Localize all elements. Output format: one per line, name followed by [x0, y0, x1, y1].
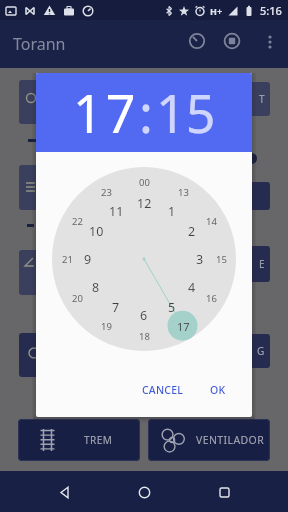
staticText: 11 — [109, 203, 124, 219]
button[interactable] — [19, 250, 49, 295]
staticText: CANCEL — [142, 383, 184, 397]
staticText: 2 — [188, 223, 196, 239]
staticText: 8 — [92, 279, 100, 295]
button[interactable]: E — [240, 246, 270, 282]
staticText: 5 — [168, 299, 176, 315]
staticText: 12 — [137, 195, 152, 211]
button[interactable] — [240, 182, 270, 210]
button[interactable]: VENTILADOR — [148, 419, 270, 461]
staticText: 3 — [196, 251, 204, 267]
staticText: 17 — [73, 77, 139, 148]
staticText: G — [257, 344, 265, 358]
staticText: E — [259, 257, 265, 271]
button[interactable] — [19, 80, 49, 124]
staticText: 18 — [139, 330, 150, 343]
staticText: 20 — [72, 292, 83, 305]
staticText: 00 — [139, 176, 150, 189]
button[interactable] — [187, 31, 207, 51]
staticText: 21 — [62, 253, 73, 266]
staticText: 15 — [216, 253, 227, 266]
staticText: 22 — [72, 215, 83, 228]
staticText: 23 — [101, 186, 112, 199]
button[interactable] — [222, 31, 242, 51]
staticText: 7 — [112, 299, 120, 315]
staticText: 1 — [168, 203, 176, 219]
staticText: 9 — [84, 251, 92, 267]
button[interactable]: T — [240, 82, 270, 116]
staticText: 4 — [188, 279, 196, 295]
staticText: 19 — [101, 320, 112, 333]
staticText: T — [259, 92, 265, 106]
staticText: 13 — [178, 186, 189, 199]
staticText: 16 — [206, 292, 217, 305]
staticText: : — [139, 77, 156, 148]
staticText: TREM — [84, 433, 113, 447]
button[interactable]: TREM — [18, 419, 140, 461]
button[interactable]: G — [240, 334, 270, 368]
button[interactable] — [262, 34, 278, 50]
staticText: 17 — [177, 319, 190, 334]
staticText: VENTILADOR — [196, 433, 265, 447]
staticText: 15 — [156, 77, 216, 148]
button[interactable] — [44, 477, 84, 507]
button[interactable]: OK — [204, 377, 232, 403]
staticText: 6 — [140, 307, 148, 323]
button[interactable] — [19, 333, 49, 377]
staticText: OK — [210, 383, 226, 397]
staticText: H+ — [210, 5, 223, 17]
button[interactable] — [204, 477, 244, 507]
staticText: 10 — [89, 223, 104, 239]
staticText: Torann — [13, 33, 66, 55]
button[interactable] — [19, 165, 49, 210]
button[interactable] — [124, 477, 164, 507]
staticText: 14 — [206, 215, 217, 228]
staticText: 5:16 — [260, 3, 282, 18]
button[interactable]: CANCEL — [136, 377, 190, 403]
